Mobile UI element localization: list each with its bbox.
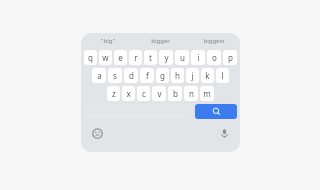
staticText: f <box>146 70 149 81</box>
button[interactable]: i <box>191 50 205 65</box>
button[interactable]: "big" <box>81 33 134 48</box>
button[interactable]: p <box>223 50 237 65</box>
staticText: t <box>149 52 152 63</box>
button[interactable]: j <box>186 68 199 83</box>
staticText: j <box>191 70 194 81</box>
button[interactable]: l <box>216 68 229 83</box>
button[interactable]: bigger <box>134 33 187 48</box>
button[interactable]: t <box>144 50 157 65</box>
button[interactable]: f <box>140 68 154 83</box>
button[interactable]: z <box>107 86 120 101</box>
button[interactable]: x <box>122 86 135 101</box>
button[interactable]: w <box>99 50 112 65</box>
staticText: bigger <box>151 37 170 45</box>
staticText: l <box>221 70 224 81</box>
staticText: x <box>126 88 131 99</box>
button[interactable]: b <box>168 86 182 101</box>
staticText: b <box>173 88 178 99</box>
button[interactable]: o <box>207 50 221 65</box>
button[interactable]: r <box>129 50 142 65</box>
staticText: biggest <box>203 37 225 45</box>
staticText: y <box>164 52 169 63</box>
staticText: s <box>113 70 117 81</box>
staticText: h <box>175 70 180 81</box>
staticText: r <box>134 52 138 63</box>
button[interactable]: a <box>92 68 106 83</box>
staticText: o <box>212 52 217 63</box>
staticText: z <box>112 88 116 99</box>
button[interactable]: y <box>159 50 173 65</box>
button[interactable]: Search <box>195 104 237 119</box>
button[interactable]: k <box>201 68 214 83</box>
staticText: v <box>157 88 162 99</box>
button[interactable]: u <box>175 50 189 65</box>
staticText: n <box>189 88 194 99</box>
staticText: g <box>160 70 165 81</box>
staticText: m <box>203 88 211 99</box>
staticText: w <box>102 52 109 63</box>
staticText: i <box>197 52 200 63</box>
button[interactable]: s <box>108 68 122 83</box>
staticText: e <box>118 52 123 63</box>
button[interactable]: Voice input <box>217 126 231 140</box>
button[interactable]: e <box>114 50 127 65</box>
staticText: k <box>205 70 210 81</box>
button[interactable]: v <box>152 86 166 101</box>
staticText: p <box>228 52 233 63</box>
button[interactable]: m <box>200 86 214 101</box>
staticText: u <box>180 52 185 63</box>
button[interactable]: biggest <box>187 33 240 48</box>
button[interactable]: Emoji <box>90 126 104 140</box>
button[interactable]: c <box>137 86 150 101</box>
staticText: a <box>97 70 102 81</box>
staticText: "big" <box>101 37 115 45</box>
staticText: q <box>88 52 93 63</box>
button[interactable]: h <box>171 68 184 83</box>
button[interactable]: d <box>124 68 138 83</box>
staticText: d <box>129 70 134 81</box>
button[interactable]: n <box>184 86 198 101</box>
button[interactable]: g <box>156 68 169 83</box>
button[interactable]: q <box>84 50 97 65</box>
staticText: c <box>142 88 146 99</box>
